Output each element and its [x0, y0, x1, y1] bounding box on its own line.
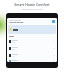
- staticText: Living Room: [9, 21, 24, 24]
- button[interactable]: [9, 53, 55, 57]
- staticText: Good morning: [9, 19, 21, 21]
- staticText: Everything in one app: [22, 8, 43, 11]
- button[interactable]: [9, 60, 55, 62]
- button[interactable]: [9, 39, 55, 43]
- button[interactable]: [8, 25, 56, 34]
- button[interactable]: [9, 46, 55, 50]
- staticText: Smart Home Comfort: [14, 2, 50, 7]
- button[interactable]: Profile: [52, 20, 55, 23]
